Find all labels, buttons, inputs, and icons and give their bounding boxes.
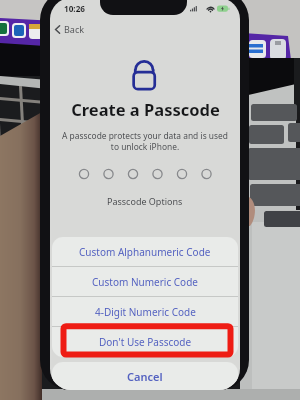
button[interactable]: Cancel xyxy=(52,362,238,390)
staticText: A passcode protects your data and is use… xyxy=(62,130,228,152)
staticText: Custom Numeric Code xyxy=(92,275,198,289)
button[interactable]: Don't Use Passcode xyxy=(52,327,238,357)
staticText: Custom Alphanumeric Code xyxy=(79,245,211,259)
staticText: Passcode Options xyxy=(107,195,183,207)
staticText: Cancel xyxy=(127,369,163,384)
staticText: Create a Passcode xyxy=(71,98,220,120)
staticText: Don't Use Passcode xyxy=(99,335,192,349)
button[interactable]: 4-Digit Numeric Code xyxy=(52,297,238,326)
button[interactable]: Back xyxy=(53,21,87,37)
staticText: 4-Digit Numeric Code xyxy=(95,305,196,319)
staticText: Back xyxy=(64,23,85,35)
staticText: 10:26 xyxy=(64,3,86,14)
button[interactable]: Custom Numeric Code xyxy=(52,267,238,296)
button[interactable]: Custom Alphanumeric Code xyxy=(52,237,238,266)
